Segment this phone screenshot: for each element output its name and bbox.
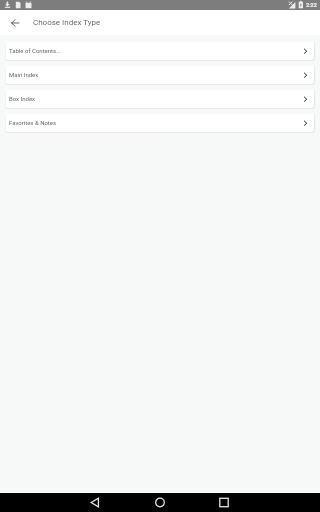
button[interactable]: Favorites & Notes (6, 114, 314, 132)
staticText: Favorites & Notes (9, 119, 57, 126)
button[interactable]: Table of Contents... (6, 42, 314, 60)
button[interactable]: Back (85, 493, 105, 512)
button[interactable]: Back (5, 13, 24, 32)
staticText: Choose Index Type (33, 18, 101, 27)
staticText: Main Index (9, 71, 39, 78)
staticText: 2:22 (306, 2, 317, 8)
button[interactable]: Box Index (6, 90, 314, 108)
button[interactable]: Home (150, 493, 170, 512)
button[interactable]: Recents (214, 493, 234, 512)
button[interactable]: Main Index (6, 66, 314, 84)
staticText: Table of Contents... (9, 47, 61, 54)
staticText: Box Index (9, 95, 36, 102)
